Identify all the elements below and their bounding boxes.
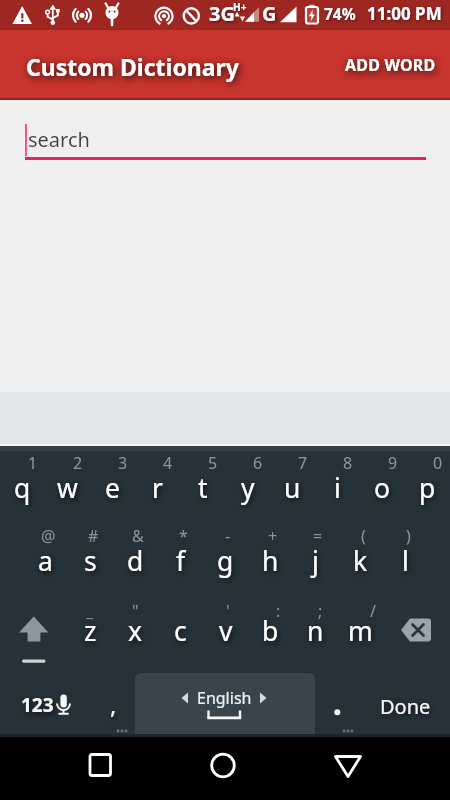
button[interactable]: [247, 518, 292, 590]
staticText: #: [88, 525, 99, 545]
staticText: *: [179, 525, 188, 545]
staticText: z: [84, 613, 97, 649]
staticText: 7: [298, 452, 308, 472]
button[interactable]: [202, 590, 247, 662]
button[interactable]: [270, 446, 315, 518]
staticText: +: [268, 525, 278, 545]
button[interactable]: [360, 446, 405, 518]
button[interactable]: [202, 518, 247, 590]
staticText: n: [307, 613, 324, 649]
staticText: k: [353, 543, 368, 579]
staticText: v: [219, 613, 233, 649]
button[interactable]: [315, 662, 360, 734]
button[interactable]: [0, 590, 67, 662]
staticText: ): [406, 525, 411, 545]
staticText: search: [28, 126, 90, 153]
button[interactable]: [0, 662, 90, 734]
button[interactable]: [67, 518, 112, 590]
staticText: ADD WORD: [345, 54, 436, 76]
staticText: =: [313, 525, 323, 545]
staticText: 0: [433, 452, 443, 472]
staticText: u: [284, 470, 301, 506]
staticText: w: [57, 470, 78, 506]
button[interactable]: [112, 518, 157, 590]
button[interactable]: [180, 446, 225, 518]
button[interactable]: [315, 446, 360, 518]
staticText: English: [197, 687, 252, 709]
button[interactable]: [135, 446, 180, 518]
staticText: H+: [233, 0, 247, 14]
button[interactable]: [45, 446, 90, 518]
staticText: i: [334, 470, 341, 506]
button[interactable]: [157, 590, 202, 662]
staticText: a: [38, 543, 53, 579]
button[interactable]: [193, 737, 253, 797]
button[interactable]: ADD WORD: [338, 41, 442, 89]
staticText: e: [105, 470, 120, 506]
staticText: m: [348, 613, 373, 649]
staticText: :: [276, 600, 281, 620]
staticText: 11:00 PM: [367, 2, 442, 25]
staticText: 3G: [209, 0, 235, 27]
staticText: j: [312, 543, 319, 579]
staticText: @: [41, 525, 56, 545]
button[interactable]: [337, 590, 382, 662]
staticText: g: [217, 543, 234, 579]
button[interactable]: [90, 446, 135, 518]
staticText: d: [127, 543, 144, 579]
staticText: 5: [208, 452, 218, 472]
staticText: t: [198, 470, 208, 506]
button[interactable]: [112, 590, 157, 662]
staticText: ': [226, 600, 230, 620]
button[interactable]: [318, 737, 378, 797]
staticText: f: [176, 543, 186, 579]
button[interactable]: [292, 590, 337, 662]
staticText: o: [374, 470, 391, 506]
staticText: x: [128, 613, 143, 649]
staticText: 3: [118, 452, 128, 472]
button[interactable]: [225, 446, 270, 518]
button[interactable]: [247, 590, 292, 662]
staticText: h: [262, 543, 279, 579]
button[interactable]: search: [25, 114, 426, 164]
staticText: l: [402, 543, 409, 579]
staticText: 74%: [324, 3, 356, 24]
staticText: _: [86, 600, 94, 620]
button[interactable]: [157, 518, 202, 590]
staticText: Done: [380, 693, 431, 720]
staticText: ;: [318, 600, 323, 620]
staticText: -: [225, 525, 231, 545]
staticText: ,: [110, 688, 117, 721]
button[interactable]: [67, 590, 112, 662]
staticText: s: [84, 543, 97, 579]
staticText: q: [14, 470, 31, 506]
staticText: ": [132, 600, 139, 620]
staticText: c: [174, 613, 187, 649]
button[interactable]: [22, 518, 67, 590]
staticText: Custom Dictionary: [26, 51, 239, 82]
staticText: 9: [388, 452, 398, 472]
button[interactable]: [405, 446, 450, 518]
staticText: 123: [21, 692, 54, 718]
staticText: y: [241, 470, 255, 506]
button[interactable]: [382, 590, 450, 662]
button[interactable]: [360, 662, 450, 734]
button[interactable]: [90, 662, 135, 734]
button[interactable]: [292, 518, 337, 590]
staticText: (: [361, 525, 366, 545]
staticText: b: [262, 613, 279, 649]
staticText: 6: [253, 452, 263, 472]
button[interactable]: [135, 673, 315, 734]
staticText: G: [262, 0, 277, 27]
staticText: r: [152, 470, 163, 506]
staticText: 1: [28, 452, 38, 472]
button[interactable]: [0, 446, 45, 518]
staticText: 4: [163, 452, 173, 472]
staticText: /: [370, 600, 376, 620]
staticText: p: [419, 470, 436, 506]
button[interactable]: [337, 518, 382, 590]
button[interactable]: [382, 518, 427, 590]
staticText: 2: [73, 452, 83, 472]
button[interactable]: [70, 737, 130, 797]
staticText: 8: [343, 452, 353, 472]
